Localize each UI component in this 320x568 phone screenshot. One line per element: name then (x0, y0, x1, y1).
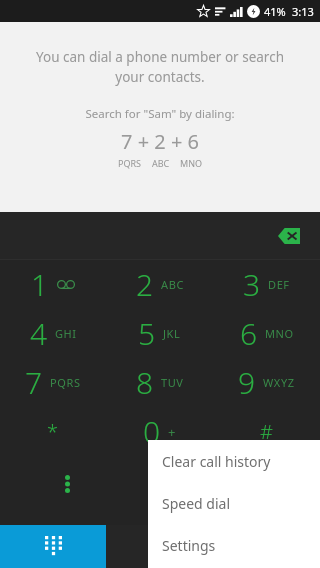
staticText: 1 (31, 264, 49, 305)
button[interactable]: 9 (213, 358, 320, 407)
button[interactable]: 6 (213, 309, 320, 358)
button[interactable]: Contacts (213, 525, 320, 568)
staticText: Clear call history (162, 452, 271, 471)
button[interactable]: 7 (0, 358, 106, 407)
button[interactable]: Backspace (272, 221, 306, 251)
button[interactable]: Settings (148, 524, 320, 566)
staticText: Speed dial (162, 494, 231, 513)
button[interactable]: 8 (106, 358, 213, 407)
button[interactable]: 0 (106, 407, 213, 456)
staticText: ABC (152, 157, 170, 169)
button[interactable]: # (213, 407, 320, 456)
button[interactable]: 2 (106, 260, 213, 309)
staticText: 4 (30, 313, 48, 354)
staticText: + (168, 423, 177, 441)
button[interactable]: 3 (213, 260, 320, 309)
staticText: JKL (163, 326, 181, 341)
staticText: # (260, 418, 273, 445)
staticText: MNO (265, 326, 294, 341)
staticText: 7 + 2 + 6 (121, 128, 199, 155)
staticText: TUV (161, 375, 184, 390)
staticText: You can dial a phone number or search yo… (34, 48, 286, 86)
staticText: 5 (138, 313, 156, 354)
staticText: GHI (55, 326, 77, 341)
staticText: ABC (161, 277, 184, 292)
staticText: MNO (180, 157, 203, 169)
staticText: Search for "Sam" by dialing: (85, 106, 235, 122)
staticText: 9 (238, 362, 256, 403)
staticText: 3:13 (292, 4, 314, 19)
staticText: * (47, 418, 59, 445)
staticText: 0 (143, 411, 161, 452)
button[interactable]: 5 (106, 309, 213, 358)
button[interactable]: Call history (106, 525, 213, 568)
button[interactable]: * (0, 407, 106, 456)
staticText: 7 (25, 362, 43, 403)
button[interactable]: More options (46, 463, 88, 505)
staticText: DEF (268, 277, 290, 292)
staticText: Settings (162, 536, 216, 555)
button[interactable]: Speed dial (148, 482, 320, 524)
staticText: WXYZ (263, 375, 295, 390)
staticText: 6 (240, 313, 258, 354)
button[interactable]: Dialpad (0, 525, 106, 568)
button[interactable]: Clear call history (148, 440, 320, 482)
button[interactable]: 1 (0, 260, 106, 309)
button[interactable]: 4 (0, 309, 106, 358)
staticText: 8 (136, 362, 154, 403)
staticText: PQRS (50, 375, 81, 390)
staticText: 3 (243, 264, 261, 305)
staticText: 41% (264, 4, 286, 19)
staticText: PQRS (118, 157, 142, 169)
staticText: 2 (136, 264, 154, 305)
